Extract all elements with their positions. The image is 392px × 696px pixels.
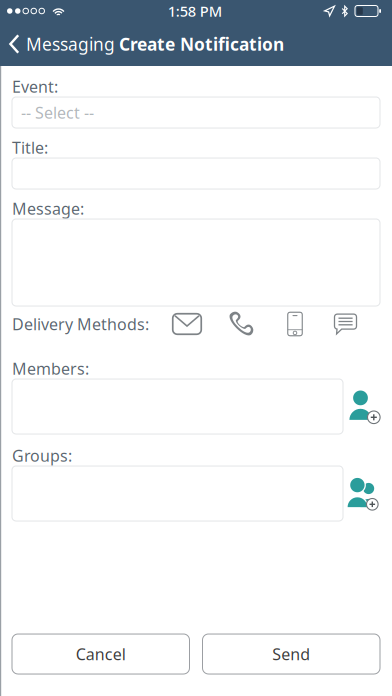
staticText: Title: (12, 137, 48, 158)
button[interactable]: Phone call (212, 307, 270, 341)
staticText: Message: (12, 198, 84, 219)
staticText: -- Select -- (21, 102, 94, 123)
button[interactable]: Email (162, 307, 212, 341)
staticText: Groups: (12, 445, 72, 466)
staticText: Members: (12, 358, 89, 379)
staticText: Cancel (76, 643, 126, 665)
button[interactable]: Push notification (270, 307, 320, 341)
button[interactable]: Send (202, 634, 380, 674)
staticText: Messaging (26, 32, 115, 55)
staticText: Create Notification (119, 32, 284, 55)
button[interactable]: Add member (349, 389, 381, 423)
staticText: Delivery Methods: (12, 313, 149, 335)
button[interactable]: Cancel (12, 634, 189, 674)
staticText: Send (272, 643, 310, 665)
staticText: Event: (12, 76, 58, 97)
staticText: 1:58 PM (168, 1, 222, 21)
button[interactable]: Add group (347, 476, 379, 510)
button[interactable]: Back to Messaging (0, 22, 119, 66)
button[interactable]: Text message (320, 307, 371, 341)
